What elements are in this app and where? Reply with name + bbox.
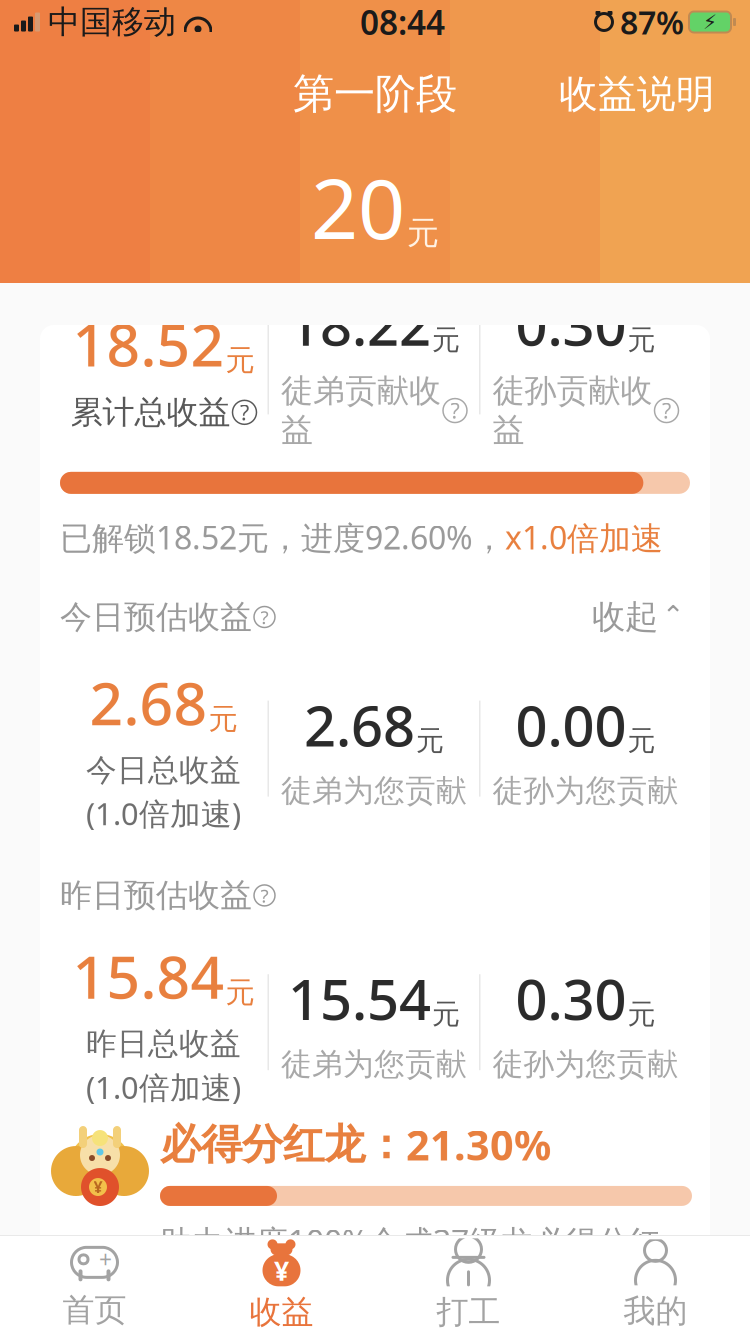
button[interactable]: + [1, 1236, 188, 1334]
staticText: (1.0倍加速) [86, 1067, 241, 1107]
staticText: 徒孙为您贡献 [492, 1046, 678, 1083]
staticText: 21.30% [406, 1117, 551, 1172]
staticText: ? [260, 883, 268, 908]
staticText: 徒弟为您贡献 [281, 1046, 467, 1083]
staticText: 0.00 [515, 688, 626, 762]
staticText: 元 [627, 723, 655, 758]
staticText: 0.30% [517, 1283, 651, 1334]
staticText: ¥ [93, 1176, 102, 1198]
staticText: 今日总收益 [86, 751, 241, 789]
staticText: (1.0倍加速) [86, 793, 241, 834]
staticText: 元 [407, 213, 439, 253]
staticText: 元 [627, 323, 655, 357]
button[interactable]: 打工 [375, 1236, 562, 1334]
staticText: 第一阶段 [293, 69, 457, 119]
staticText: 18.52 [72, 305, 224, 383]
staticText: 中国移动 [48, 2, 176, 42]
staticText: 08:44 [360, 0, 445, 44]
staticText: 助力进度100%合成37级龙必得分红龙 [160, 1220, 661, 1302]
staticText: 0.30 [515, 961, 626, 1036]
staticText: 收起 [592, 596, 658, 637]
staticText: 19.00% [84, 1283, 245, 1334]
button[interactable]: 我的 [562, 1236, 749, 1334]
staticText: 昨日总收益 [86, 1025, 241, 1063]
staticText: 收益 [249, 1292, 313, 1332]
staticText: 2.68 [304, 688, 415, 762]
staticText: 元 [225, 974, 254, 1010]
staticText: 收益说明 [559, 70, 715, 118]
staticText: 87% [620, 1, 684, 43]
staticText: ⚡︎ [703, 11, 717, 33]
button[interactable]: 收起 [586, 592, 690, 641]
staticText: ? [240, 398, 249, 426]
staticText: 徒弟贡献收益 [281, 371, 441, 450]
staticText: 昨日预估收益 [60, 876, 252, 915]
staticText: 已解锁18.52元，进度92.60%， [60, 516, 505, 558]
staticText: 徒孙贡献收益 [492, 371, 652, 450]
staticText: + [99, 1244, 112, 1274]
staticText: 徒弟为您贡献 [281, 772, 467, 810]
staticText: 徒孙为您贡献 [492, 772, 678, 810]
staticText: x1.0倍加速 [505, 516, 663, 559]
staticText: 0.30 [515, 287, 626, 361]
staticText: 我的 [623, 1291, 687, 1331]
staticText: 元 [225, 342, 254, 378]
staticText: 首页 [62, 1290, 126, 1330]
staticText: ¥ [274, 1253, 289, 1288]
button[interactable]: 收益说明 [549, 62, 725, 126]
staticText: 2.68 [89, 663, 207, 741]
staticText: 打工 [436, 1292, 500, 1332]
staticText: 18.22 [288, 287, 431, 361]
button[interactable]: ¥ [188, 1236, 375, 1334]
staticText: 累计总收益 [70, 393, 230, 432]
staticText: 必得分红龙： [160, 1119, 406, 1170]
staticText: 15.84 [72, 937, 224, 1015]
staticText: 元 [416, 723, 444, 758]
staticText: 20 [311, 152, 405, 262]
staticText: 2.00% [307, 1283, 441, 1334]
staticText: ? [260, 605, 268, 629]
staticText: ? [662, 396, 671, 425]
staticText: 今日预估收益 [60, 597, 252, 637]
staticText: 元 [432, 997, 460, 1031]
staticText: 元 [432, 323, 460, 357]
staticText: 元 [627, 997, 655, 1031]
staticText: 15.54 [288, 961, 431, 1036]
staticText: 元 [208, 701, 237, 737]
staticText: ? [450, 396, 459, 425]
staticText: ⌃ [662, 600, 684, 630]
